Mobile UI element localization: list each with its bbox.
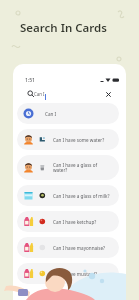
- button[interactable]: Can I have a glass of water?: [17, 155, 119, 180]
- staticText: Can I have mayonnaise?: [53, 245, 111, 251]
- staticText: Can I have some water?: [53, 137, 111, 143]
- staticText: Search In Cards: [20, 20, 107, 36]
- button[interactable]: Can I have mustard?: [17, 263, 119, 284]
- button[interactable]: Can I: [17, 103, 119, 124]
- button[interactable]: Can I: [25, 88, 120, 100]
- staticText: Can I have a glass of water?: [53, 162, 111, 174]
- staticText: Can I have a glass of milk?: [53, 193, 111, 199]
- staticText: 1:51: [25, 77, 35, 84]
- staticText: Can I have mustard?: [53, 271, 111, 277]
- button[interactable]: Clear search: [102, 88, 114, 100]
- staticText: Can I: [34, 91, 45, 97]
- button[interactable]: Can I have some water?: [17, 129, 119, 150]
- staticText: Can I have ketchup?: [53, 219, 111, 225]
- button[interactable]: Can I have a glass of milk?: [17, 185, 119, 206]
- staticText: Can I: [45, 111, 103, 117]
- button[interactable]: Can I have mayonnaise?: [17, 237, 119, 258]
- button[interactable]: Can I have ketchup?: [17, 211, 119, 232]
